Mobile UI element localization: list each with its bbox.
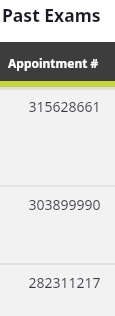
button[interactable]: Appointment # [0, 42, 115, 81]
button[interactable]: 315628661 [0, 87, 115, 185]
staticText: 315628661 [28, 97, 101, 116]
staticText: Past Exams [2, 3, 101, 27]
staticText: Appointment # [8, 55, 99, 71]
button[interactable]: 282311217 [0, 263, 115, 316]
staticText: 303899990 [28, 195, 101, 214]
staticText: 282311217 [28, 273, 101, 292]
button[interactable]: 303899990 [0, 185, 115, 263]
